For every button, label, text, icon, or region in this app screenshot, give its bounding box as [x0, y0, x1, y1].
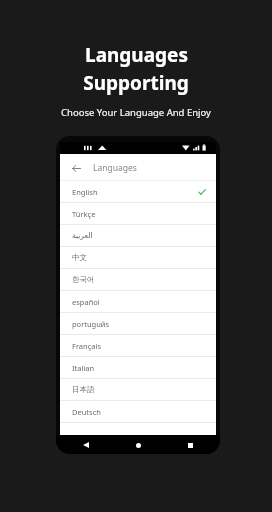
button[interactable]: Back: [68, 160, 84, 176]
staticText: Türkçe: [72, 209, 96, 219]
button[interactable]: Italian: [60, 357, 216, 379]
staticText: Languages: [85, 42, 188, 68]
button[interactable]: Recent apps: [182, 437, 198, 453]
button[interactable]: English: [60, 181, 216, 203]
button[interactable]: Français: [60, 335, 216, 357]
staticText: 한국어: [72, 275, 95, 284]
button[interactable]: Back: [78, 437, 94, 453]
staticText: español: [72, 297, 100, 307]
staticText: English: [72, 187, 98, 197]
staticText: Italian: [72, 363, 95, 373]
staticText: Languages: [93, 162, 137, 174]
staticText: 日本語: [72, 385, 95, 394]
button[interactable]: Home: [130, 437, 146, 453]
button[interactable]: 한국어: [60, 269, 216, 291]
button[interactable]: portuguйs: [60, 313, 216, 335]
button[interactable]: 中文: [60, 247, 216, 269]
staticText: Choose Your Language And Enjoy: [61, 106, 211, 119]
staticText: العربية: [72, 231, 93, 240]
button[interactable]: Türkçe: [60, 203, 216, 225]
staticText: Deutsch: [72, 407, 101, 417]
button[interactable]: 日本語: [60, 379, 216, 401]
staticText: portuguйs: [72, 319, 110, 329]
button[interactable]: العربية: [60, 225, 216, 247]
button[interactable]: Deutsch: [60, 401, 216, 423]
button[interactable]: español: [60, 291, 216, 313]
staticText: Supporting: [83, 70, 189, 96]
staticText: 中文: [72, 253, 87, 262]
staticText: Français: [72, 341, 102, 351]
